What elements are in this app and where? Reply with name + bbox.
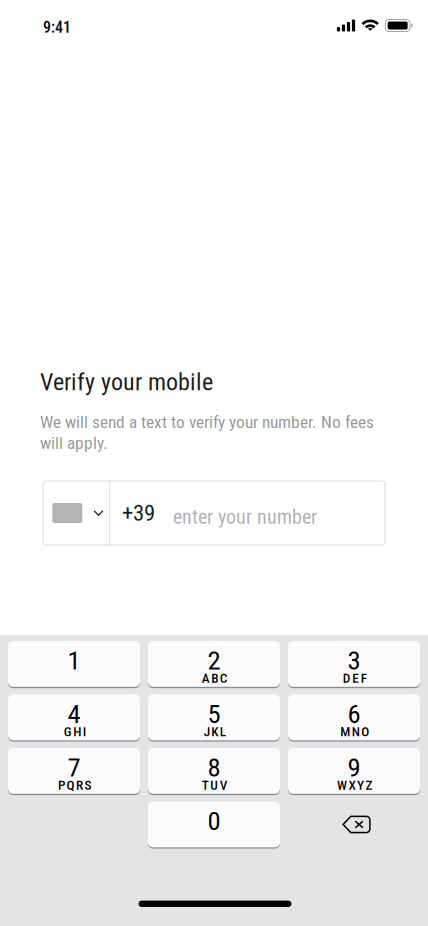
- staticText: 0: [207, 805, 220, 836]
- staticText: 6: [347, 698, 360, 729]
- staticText: will apply.: [40, 433, 108, 453]
- staticText: 1: [67, 645, 80, 676]
- button[interactable]: 6: [288, 694, 420, 742]
- staticText: +39: [122, 500, 155, 526]
- button[interactable]: 2: [148, 641, 280, 688]
- staticText: 3: [347, 645, 360, 676]
- staticText: 8: [207, 752, 220, 783]
- staticText: 9:41: [43, 18, 71, 37]
- staticText: WXYZ: [337, 777, 373, 793]
- staticText: 4: [67, 698, 80, 729]
- button[interactable]: 4: [8, 694, 140, 742]
- button[interactable]: 9: [288, 748, 420, 795]
- staticText: PQRS: [58, 777, 91, 793]
- button[interactable]: Delete: [288, 801, 420, 849]
- staticText: MNO: [340, 724, 369, 740]
- staticText: Verify your mobile: [40, 368, 213, 396]
- button[interactable]: Select country code: [43, 481, 109, 545]
- button[interactable]: 5: [148, 694, 280, 742]
- staticText: ABC: [202, 670, 228, 686]
- button[interactable]: 3: [288, 641, 420, 688]
- staticText: We will send a text to verify your numbe…: [40, 412, 374, 432]
- staticText: 9: [347, 752, 360, 783]
- button[interactable]: 1: [8, 641, 140, 688]
- staticText: 2: [207, 645, 220, 676]
- staticText: enter your number: [173, 505, 317, 529]
- button[interactable]: 8: [148, 748, 280, 795]
- staticText: 7: [67, 752, 80, 783]
- staticText: JKL: [204, 724, 226, 740]
- button[interactable]: 0: [148, 801, 280, 849]
- staticText: GHI: [64, 724, 86, 740]
- button[interactable]: 7: [8, 748, 140, 795]
- staticText: 5: [207, 698, 220, 729]
- staticText: DEF: [343, 670, 367, 686]
- staticText: TUV: [202, 777, 228, 793]
